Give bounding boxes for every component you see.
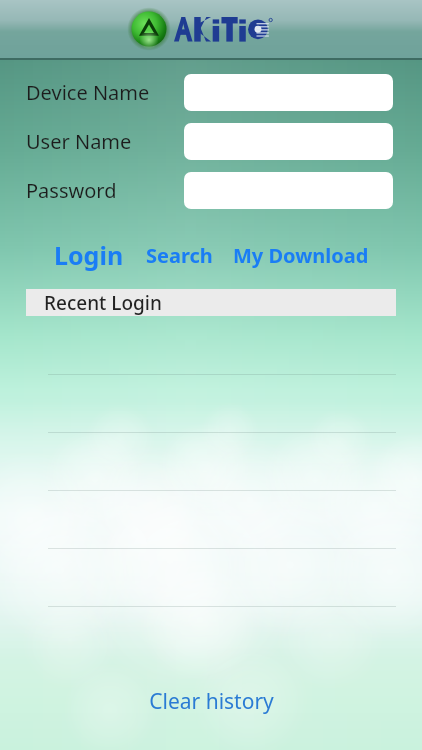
button[interactable] (0, 374, 422, 432)
button[interactable] (0, 548, 422, 606)
staticText: Password (26, 177, 184, 204)
button[interactable]: Clear history (139, 682, 284, 721)
button[interactable]: Recent Login (26, 289, 396, 316)
staticText: Device Name (26, 79, 184, 106)
staticText: Login (54, 238, 124, 272)
button[interactable]: Login (52, 235, 126, 275)
button[interactable]: User Name (184, 123, 393, 160)
button[interactable]: Device Name (184, 74, 393, 111)
button[interactable] (0, 432, 422, 490)
staticText: Clear history (149, 687, 274, 716)
button[interactable] (0, 490, 422, 548)
button[interactable]: My Download (231, 239, 371, 272)
button[interactable]: Search (144, 239, 215, 272)
staticText: Search (146, 242, 213, 269)
staticText: Recent Login (44, 290, 162, 316)
staticText: User Name (26, 128, 184, 155)
staticText: My Download (233, 242, 369, 269)
button[interactable]: Password (184, 172, 393, 209)
button[interactable] (0, 606, 422, 664)
